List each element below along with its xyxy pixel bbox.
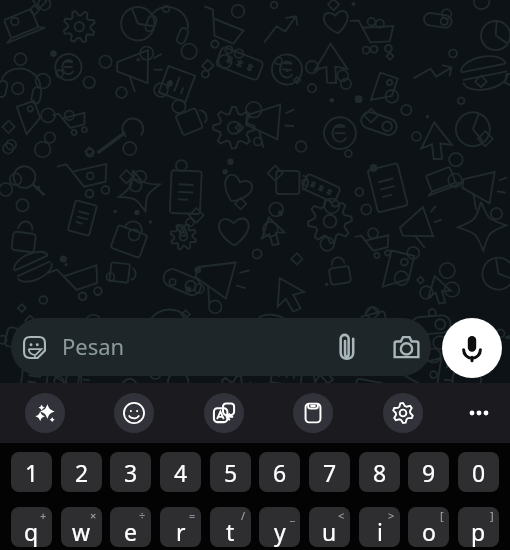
staticText: r xyxy=(176,516,186,547)
button[interactable]: 3 xyxy=(110,452,151,492)
button[interactable]: Clipboard xyxy=(293,393,333,433)
button[interactable]: 7 xyxy=(309,452,350,492)
button[interactable]: Settings xyxy=(383,393,423,433)
button[interactable]: Stickers xyxy=(12,318,57,376)
staticText: ÷ xyxy=(139,508,146,523)
staticText: 1 xyxy=(25,457,39,488)
button[interactable]: Emoji xyxy=(114,393,154,433)
staticText: w xyxy=(72,516,91,547)
button[interactable]: × xyxy=(61,507,102,547)
button[interactable]: < xyxy=(309,507,350,547)
staticText: 9 xyxy=(422,457,436,488)
button[interactable]: 4 xyxy=(160,452,201,492)
staticText: [ xyxy=(440,508,444,523)
staticText: _ xyxy=(290,508,295,523)
staticText: y xyxy=(274,516,286,547)
button[interactable]: 0 xyxy=(458,452,499,492)
staticText: 0 xyxy=(472,457,486,488)
staticText: > xyxy=(388,508,395,523)
staticText: 3 xyxy=(124,457,138,488)
button[interactable]: Translate xyxy=(204,393,244,433)
staticText: 6 xyxy=(273,457,287,488)
staticText: q xyxy=(24,516,39,547)
staticText: ] xyxy=(490,508,494,523)
button[interactable]: 8 xyxy=(359,452,400,492)
button[interactable]: Record voice message xyxy=(442,318,502,378)
button[interactable]: 6 xyxy=(259,452,300,492)
staticText: < xyxy=(338,508,345,523)
button[interactable]: ] xyxy=(458,507,499,547)
button[interactable]: AI xyxy=(25,393,65,433)
staticText: + xyxy=(40,508,47,523)
staticText: = xyxy=(189,508,196,523)
button[interactable]: 1 xyxy=(11,452,52,492)
button[interactable]: = xyxy=(160,507,201,547)
staticText: 4 xyxy=(174,457,188,488)
staticText: / xyxy=(241,508,246,523)
staticText: Pesan xyxy=(62,331,125,361)
staticText: p xyxy=(471,516,486,547)
button[interactable]: More options xyxy=(459,393,499,433)
button[interactable]: Pesan xyxy=(56,318,331,376)
button[interactable]: 5 xyxy=(210,452,251,492)
staticText: u xyxy=(322,516,337,547)
button[interactable]: / xyxy=(210,507,251,547)
staticText: 2 xyxy=(75,457,89,488)
button[interactable]: > xyxy=(359,507,400,547)
button[interactable]: 9 xyxy=(408,452,449,492)
button[interactable]: _ xyxy=(259,507,300,547)
button[interactable]: ÷ xyxy=(110,507,151,547)
staticText: 5 xyxy=(224,457,238,488)
button[interactable]: 2 xyxy=(61,452,102,492)
staticText: i xyxy=(377,516,383,547)
button[interactable]: Camera xyxy=(383,318,429,376)
staticText: 7 xyxy=(323,457,337,488)
button[interactable]: + xyxy=(11,507,52,547)
staticText: e xyxy=(124,516,137,547)
staticText: × xyxy=(90,508,97,523)
staticText: o xyxy=(422,516,436,547)
button[interactable]: [ xyxy=(408,507,449,547)
staticText: t xyxy=(226,516,235,547)
button[interactable]: Attach xyxy=(324,318,370,376)
staticText: 8 xyxy=(373,457,387,488)
